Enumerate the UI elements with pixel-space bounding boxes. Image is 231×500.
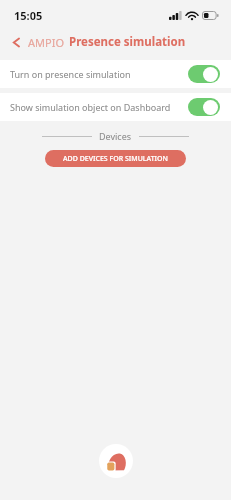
staticText: Show simulation object on Dashboard [10, 101, 182, 113]
staticText: Presence simulation [69, 34, 186, 50]
button[interactable]: Turn on presence simulation [0, 60, 231, 88]
button[interactable]: Toggle on [188, 98, 220, 116]
button[interactable]: Back [7, 33, 25, 51]
staticText: Turn on presence simulation [10, 68, 182, 80]
staticText: AMPIO [28, 35, 64, 50]
button[interactable]: ADD DEVICES FOR SIMULATION [45, 150, 186, 167]
staticText: Devices [99, 130, 132, 142]
staticText: ADD DEVICES FOR SIMULATION [63, 154, 168, 164]
button[interactable]: Ampio logo [99, 444, 133, 478]
staticText: 15:05 [14, 8, 43, 23]
button[interactable]: Toggle on [188, 65, 220, 83]
button[interactable]: Show simulation object on Dashboard [0, 93, 231, 121]
